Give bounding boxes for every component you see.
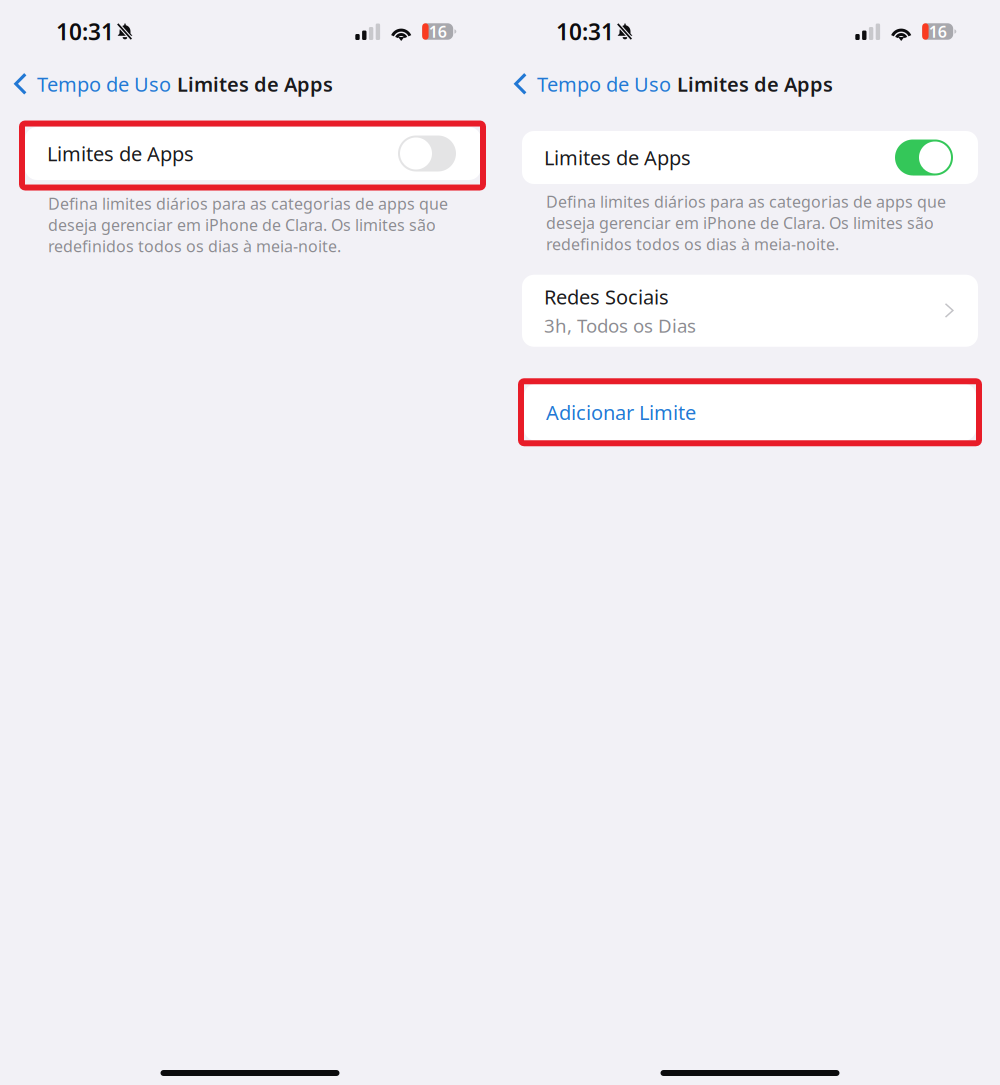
staticText: Defina limites diários para as categoria… (546, 191, 946, 255)
button[interactable]: Adicionar Limite (524, 384, 976, 441)
button[interactable]: Limites de Apps (522, 131, 978, 184)
staticText: Limites de Apps (177, 71, 333, 97)
staticText: 10:31 (556, 16, 614, 46)
staticText: Limites de Apps (544, 144, 691, 171)
staticText: 16 (929, 21, 947, 42)
staticText: Tempo de Uso (537, 71, 671, 97)
staticText: 10:31 (56, 16, 114, 46)
staticText: Tempo de Uso (37, 71, 171, 97)
staticText: 3h, Todos os Dias (544, 313, 696, 338)
button[interactable]: Voltar para Tempo de Uso (0, 63, 177, 105)
staticText: Adicionar Limite (546, 399, 696, 426)
staticText: Redes Sociais (544, 284, 669, 310)
staticText: 16 (429, 21, 447, 42)
staticText: Limites de Apps (47, 140, 194, 167)
button[interactable]: Limites de Apps (25, 127, 481, 180)
staticText: Defina limites diários para as categoria… (48, 193, 448, 257)
button[interactable]: Voltar para Tempo de Uso (500, 63, 677, 105)
staticText: Limites de Apps (677, 71, 833, 97)
button[interactable]: Redes Sociais (522, 275, 978, 347)
